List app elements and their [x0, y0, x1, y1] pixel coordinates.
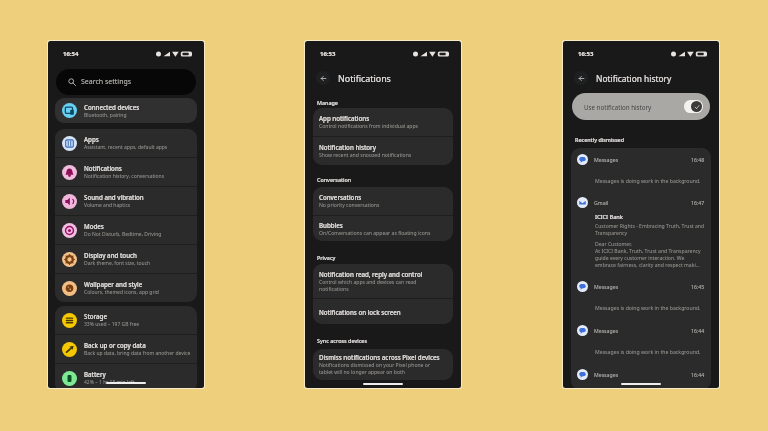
- staticText: Dark theme, font size, touch: [84, 260, 151, 267]
- button[interactable]: Wallpaper and style: [55, 274, 197, 302]
- staticText: Back up or copy data: [84, 341, 146, 349]
- staticText: App notifications: [319, 114, 370, 122]
- staticText: Notification history: [596, 73, 672, 84]
- staticText: Messages: [594, 283, 619, 290]
- staticText: Bubbles: [319, 221, 343, 229]
- staticText: Connected devices: [84, 103, 140, 111]
- staticText: Assistant, recent apps, default apps: [84, 144, 168, 151]
- staticText: Messages: [594, 327, 619, 334]
- staticText: Sound and vibration: [84, 193, 144, 201]
- staticText: 42% – 1 hr 15 min left: [84, 379, 135, 386]
- staticText: Control which apps and devices can read …: [319, 279, 423, 293]
- button[interactable]: Search settings: [56, 69, 196, 95]
- staticText: Display and touch: [84, 251, 137, 259]
- staticText: Colours, themed icons, app grid: [84, 289, 159, 296]
- button[interactable]: Apps: [55, 129, 197, 157]
- button[interactable]: Conversations: [313, 187, 453, 215]
- staticText: Messages is doing work in the background…: [595, 177, 701, 184]
- button[interactable]: Dismiss notifications across Pixel devic…: [313, 349, 453, 380]
- button[interactable]: Messages: [571, 325, 711, 355]
- button[interactable]: Notification history: [313, 137, 453, 165]
- staticText: Volume and haptics: [84, 202, 131, 209]
- staticText: Notifications on lock screen: [319, 308, 401, 316]
- staticText: Do Not Disturb, Bedtime, Driving: [84, 231, 162, 238]
- staticText: Control notifications from individual ap…: [319, 123, 418, 130]
- staticText: Notifications dismissed on your Pixel ph…: [319, 362, 435, 376]
- staticText: Show recent and snoozed notifications: [319, 152, 412, 159]
- button[interactable]: Notifications: [55, 158, 197, 186]
- button[interactable]: Modes: [55, 216, 197, 244]
- staticText: Dear Customer, At ICICI Bank, Truth, Tru…: [595, 241, 702, 269]
- button[interactable]: Back: [574, 71, 588, 85]
- staticText: Use notification history: [584, 103, 652, 111]
- staticText: On/Conversations can appear as floating …: [319, 230, 431, 237]
- staticText: Search settings: [81, 77, 132, 87]
- button[interactable]: Notifications on lock screen: [313, 299, 453, 324]
- staticText: Dismiss notifications across Pixel devic…: [319, 353, 440, 361]
- staticText: Recently dismissed: [575, 136, 625, 143]
- staticText: Notifications: [84, 164, 122, 172]
- staticText: 16:44: [691, 327, 705, 334]
- staticText: Messages is doing work in the background…: [595, 304, 701, 311]
- staticText: Messages: [594, 371, 619, 378]
- staticText: Notification history, conversations: [84, 173, 165, 180]
- staticText: Modes: [84, 222, 104, 230]
- button[interactable]: Storage: [55, 306, 197, 334]
- staticText: ICICI Bank: [595, 213, 623, 221]
- button[interactable]: Sound and vibration: [55, 187, 197, 215]
- staticText: Customer Rights - Embracing Truth, Trust…: [595, 223, 707, 237]
- button[interactable]: Back: [316, 71, 330, 85]
- staticText: Sync across devices: [317, 337, 368, 344]
- button[interactable]: App notifications: [313, 108, 453, 136]
- staticText: 16:47: [691, 199, 705, 206]
- staticText: 16:53: [320, 50, 336, 58]
- button[interactable]: Messages: [571, 369, 711, 380]
- staticText: 16:53: [578, 50, 594, 58]
- staticText: Notification read, reply and control: [319, 270, 423, 278]
- staticText: Battery: [84, 370, 106, 378]
- button[interactable]: Back up or copy data: [55, 335, 197, 363]
- staticText: Gmail: [594, 199, 609, 206]
- staticText: 16:48: [691, 156, 705, 163]
- button[interactable]: Use notification history: [572, 93, 710, 120]
- staticText: Conversation: [317, 176, 352, 183]
- staticText: Back up data, bring data from another de…: [84, 350, 191, 357]
- button[interactable]: Messages: [571, 281, 711, 311]
- button[interactable]: Messages: [571, 154, 711, 184]
- staticText: Apps: [84, 135, 99, 143]
- button[interactable]: Gmail: [571, 197, 711, 269]
- staticText: Conversations: [319, 193, 362, 201]
- staticText: Privacy: [317, 254, 336, 261]
- staticText: Messages: [594, 156, 619, 163]
- staticText: Messages is doing work in the background…: [595, 348, 701, 355]
- staticText: Notification history: [319, 143, 376, 151]
- staticText: 16:44: [691, 371, 705, 378]
- staticText: 33% used – 197 GB free: [84, 321, 140, 328]
- staticText: 16:45: [691, 283, 705, 290]
- button[interactable]: Display and touch: [55, 245, 197, 273]
- button[interactable]: Bubbles: [313, 216, 453, 241]
- staticText: Bluetooth, pairing: [84, 112, 127, 119]
- staticText: No priority conversations: [319, 202, 380, 209]
- button[interactable]: Battery: [55, 364, 197, 388]
- staticText: Wallpaper and style: [84, 280, 143, 288]
- button[interactable]: Notification read, reply and control: [313, 264, 453, 298]
- staticText: Manage: [317, 99, 338, 106]
- staticText: 16:54: [63, 50, 79, 58]
- button[interactable]: Connected devices: [55, 98, 197, 123]
- staticText: Notifications: [338, 72, 391, 84]
- staticText: Storage: [84, 312, 107, 320]
